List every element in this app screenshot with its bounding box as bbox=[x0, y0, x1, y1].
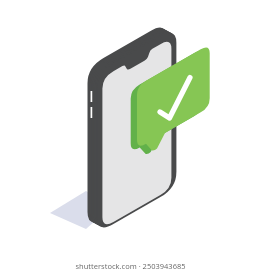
staticText: shutterstock.com · 2503943685 bbox=[75, 261, 186, 271]
